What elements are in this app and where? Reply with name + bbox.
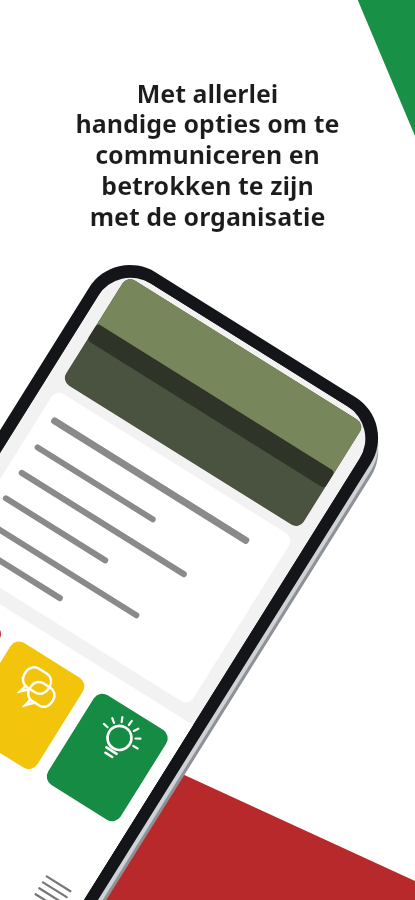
staticText: Met allerlei handige opties om te commun…: [12, 76, 403, 234]
button[interactable]: Verlof aanvragen: [14, 648, 118, 722]
button[interactable]: Notifications: [232, 648, 276, 688]
button[interactable]: Ideeenbox: [182, 578, 282, 652]
button[interactable]: Medewerkers: [142, 688, 186, 728]
button[interactable]: Home: [100, 702, 148, 746]
button[interactable]: Chat: [186, 666, 230, 706]
button[interactable]: Gesprek aanvragen: [104, 610, 202, 684]
